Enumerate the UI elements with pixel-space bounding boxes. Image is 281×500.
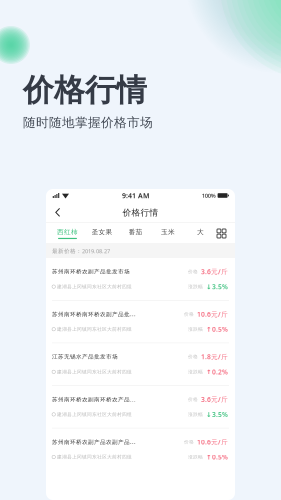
staticText: 玉米 (161, 228, 175, 236)
button[interactable]: 苏州南环桥农副南环桥农产品... (46, 386, 235, 428)
staticText: 涨跌幅 (188, 326, 203, 332)
staticText: 苏州南环桥农副产品批发市场 (52, 268, 130, 275)
staticText: ↓3.5% (206, 282, 228, 291)
staticText: 价格 (188, 396, 198, 402)
staticText: 价格 (188, 354, 198, 360)
staticText: 随时随地掌握价格市场 (23, 115, 153, 131)
staticText: 西红柿 (57, 228, 78, 236)
staticText: 3.6元/斤 (201, 267, 228, 276)
staticText: 价格 (188, 268, 198, 274)
staticText: 3.6元/斤 (201, 395, 228, 404)
staticText: 涨跌幅 (188, 454, 203, 460)
staticText: 涨跌幅 (188, 411, 203, 417)
button[interactable]: 西红柿 (57, 225, 78, 241)
button[interactable]: 玉米 (158, 225, 177, 241)
staticText: 1.8元/斤 (201, 352, 228, 361)
staticText: 番茄 (128, 228, 142, 236)
staticText: 价格行情 (23, 71, 147, 110)
button[interactable]: Back (50, 203, 66, 221)
staticText: 10.6元/斤 (197, 310, 228, 319)
staticText: 苏州南环桥农副南环桥农产品... (52, 395, 136, 403)
staticText: 建湖县上冈镇同东社区大前村四组 (57, 369, 132, 375)
staticText: 9:41 AM (122, 191, 149, 200)
staticText: 大 (197, 228, 204, 236)
staticText: 圣女果 (91, 228, 112, 236)
staticText: 涨跌幅 (188, 369, 203, 375)
button[interactable]: 番茄 (126, 225, 145, 241)
staticText: 涨跌幅 (188, 284, 203, 290)
staticText: 价格行情 (122, 207, 158, 218)
staticText: ↑0.5% (206, 325, 228, 334)
button[interactable]: 苏州南环桥农副产品农副产品... (46, 428, 235, 470)
staticText: 价格 (184, 439, 194, 445)
button[interactable]: 苏州南环桥南环桥农副产品批... (46, 301, 235, 343)
button[interactable]: Grid view (217, 229, 226, 238)
button[interactable]: 江苏无锡水产品批发市场 (46, 343, 235, 385)
staticText: 建湖县上冈镇同东社区大前村四组 (57, 454, 132, 460)
staticText: 江苏无锡水产品批发市场 (52, 353, 118, 360)
staticText: 建湖县上冈镇同东社区大前村四组 (57, 284, 132, 290)
staticText: ↑0.5% (206, 452, 228, 462)
staticText: 建湖县上冈镇同东社区大前村四组 (57, 326, 132, 332)
button[interactable]: 大 (191, 225, 210, 241)
staticText: ↑0.2% (206, 367, 228, 376)
staticText: 苏州南环桥南环桥农副产品批... (52, 310, 136, 318)
staticText: 苏州南环桥农副产品农副产品... (52, 438, 136, 446)
staticText: 100% (202, 191, 216, 199)
staticText: 最新价格：2019.08.27 (52, 247, 110, 255)
staticText: ↓3.5% (206, 410, 228, 419)
staticText: 价格 (184, 311, 194, 317)
staticText: 10.6元/斤 (197, 437, 228, 446)
button[interactable]: 苏州南环桥农副产品批发市场 (46, 258, 235, 300)
button[interactable]: 圣女果 (91, 225, 112, 241)
staticText: 建湖县上冈镇同东社区大前村四组 (57, 411, 132, 417)
